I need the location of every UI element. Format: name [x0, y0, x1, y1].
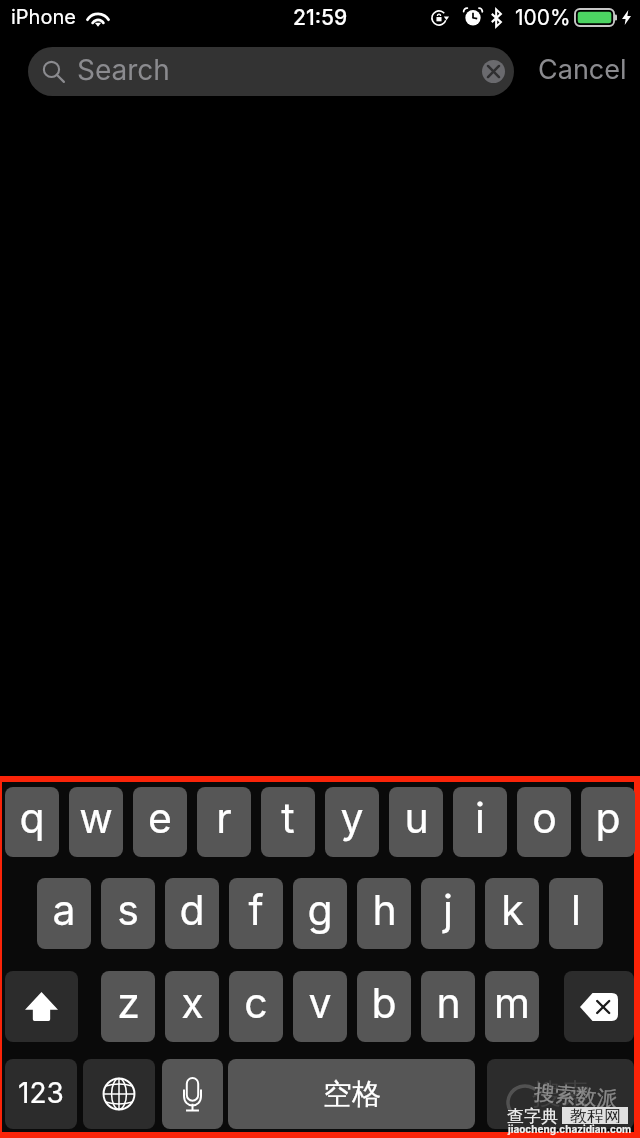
button[interactable]: v: [293, 971, 347, 1042]
button[interactable]: x: [165, 971, 219, 1042]
button[interactable]: w: [69, 787, 123, 857]
staticText: o: [532, 793, 557, 843]
staticText: b: [371, 978, 397, 1028]
staticText: x: [181, 978, 204, 1028]
staticText: q: [19, 793, 45, 843]
staticText: m: [494, 978, 530, 1028]
button[interactable]: b: [357, 971, 411, 1042]
staticText: a: [52, 885, 76, 935]
staticText: h: [372, 885, 397, 935]
button[interactable]: m: [485, 971, 539, 1042]
staticText: jiaocheng.chazidian.com: [508, 1123, 632, 1135]
button[interactable]: i: [453, 787, 507, 857]
staticText: v: [308, 978, 332, 1028]
button[interactable]: t: [261, 787, 315, 857]
staticText: Cancel: [538, 53, 627, 86]
staticText: e: [148, 793, 172, 843]
button[interactable]: r: [197, 787, 251, 857]
staticText: k: [501, 885, 524, 935]
staticText: iPhone: [11, 5, 76, 29]
staticText: l: [571, 885, 581, 935]
staticText: g: [307, 885, 333, 935]
staticText: 123: [18, 1076, 64, 1110]
button[interactable]: s: [101, 878, 155, 949]
staticText: d: [179, 885, 205, 935]
button[interactable]: z: [101, 971, 155, 1042]
button[interactable]: o: [517, 787, 571, 857]
staticText: c: [244, 978, 268, 1028]
button[interactable]: n: [421, 971, 475, 1042]
staticText: i: [475, 793, 485, 843]
staticText: p: [595, 793, 621, 843]
staticText: u: [404, 793, 429, 843]
button[interactable]: 123: [5, 1059, 77, 1129]
button[interactable]: y: [325, 787, 379, 857]
button[interactable]: Switch keyboard: [83, 1059, 155, 1129]
button[interactable]: e: [133, 787, 187, 857]
button[interactable]: Shift: [5, 971, 78, 1042]
staticText: 空格: [323, 1076, 381, 1113]
button[interactable]: j: [421, 878, 475, 949]
staticText: 搜索数派: [533, 1079, 619, 1112]
button[interactable]: a: [37, 878, 91, 949]
button[interactable]: l: [549, 878, 603, 949]
staticText: s: [117, 885, 139, 935]
button[interactable]: 搜索: [487, 1059, 634, 1129]
staticText: 教程网: [570, 1106, 621, 1123]
button[interactable]: f: [229, 878, 283, 949]
button[interactable]: Clear text: [482, 60, 505, 83]
button[interactable]: Backspace: [564, 971, 634, 1042]
button[interactable]: d: [165, 878, 219, 949]
button[interactable]: q: [5, 787, 59, 857]
button[interactable]: u: [389, 787, 443, 857]
staticText: 21:59: [293, 5, 348, 30]
button[interactable]: c: [229, 971, 283, 1042]
staticText: 100%: [515, 5, 571, 30]
button[interactable]: h: [357, 878, 411, 949]
staticText: Search: [77, 53, 170, 87]
button[interactable]: Dictation: [162, 1059, 223, 1129]
staticText: n: [436, 978, 461, 1028]
button[interactable]: Search: [28, 47, 514, 96]
staticText: 查字典: [507, 1106, 558, 1127]
staticText: w: [79, 793, 113, 843]
staticText: t: [281, 793, 295, 843]
button[interactable]: p: [581, 787, 635, 857]
staticText: y: [340, 793, 364, 843]
button[interactable]: k: [485, 878, 539, 949]
staticText: 搜索: [532, 1076, 590, 1113]
staticText: f: [248, 885, 264, 935]
button[interactable]: g: [293, 878, 347, 949]
button[interactable]: Cancel: [523, 47, 640, 96]
staticText: z: [117, 978, 140, 1028]
button[interactable]: 空格: [228, 1059, 475, 1129]
staticText: j: [443, 885, 453, 935]
staticText: r: [216, 793, 232, 843]
